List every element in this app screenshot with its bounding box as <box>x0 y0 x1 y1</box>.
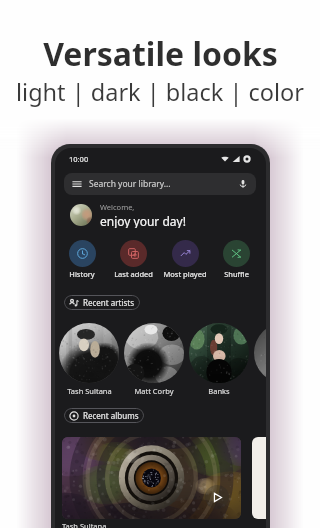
staticText: Matt Corby <box>134 386 174 396</box>
staticText: Recent albums <box>83 410 139 421</box>
staticText: Versatile looks <box>43 32 278 76</box>
button[interactable]: History <box>57 240 107 279</box>
staticText: Tash Sultana <box>67 386 112 396</box>
button[interactable]: Most played <box>160 240 210 279</box>
other: Voice search <box>238 179 248 189</box>
staticText: History <box>69 269 95 279</box>
button[interactable]: Banks <box>189 323 249 396</box>
staticText: Most played <box>163 269 207 279</box>
button[interactable]: Last added <box>108 240 158 279</box>
button[interactable]: Matt Corby <box>124 323 184 396</box>
staticText: enjoy your day! <box>100 213 186 228</box>
staticText: Banks <box>208 386 230 396</box>
staticText: Search your library... <box>89 178 171 190</box>
button[interactable]: Tash Sultana <box>59 323 119 396</box>
other: Play <box>213 493 222 502</box>
staticText: Shuffle <box>224 269 249 279</box>
button[interactable]: Play <box>62 437 241 519</box>
staticText: Welcome, <box>100 202 135 212</box>
button[interactable] <box>252 437 266 519</box>
staticText: light | dark | black | color <box>16 76 304 108</box>
staticText: 10:00 <box>69 154 89 164</box>
staticText: Recent artists <box>83 297 135 308</box>
other: Menu <box>72 179 82 189</box>
button[interactable]: Recent albums <box>64 408 144 423</box>
button[interactable]: Menu <box>64 173 256 195</box>
staticText: Last added <box>114 269 153 279</box>
button[interactable]: Shuffle <box>211 240 261 279</box>
staticText: Tash Sultana <box>62 521 107 528</box>
button[interactable]: Recent artists <box>64 295 140 310</box>
